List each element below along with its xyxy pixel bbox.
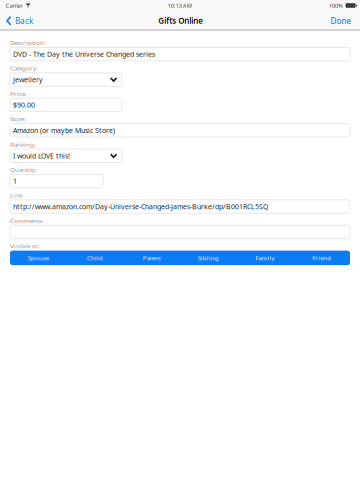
button[interactable]: $90.00: [10, 98, 122, 112]
staticText: Gifts Online: [158, 15, 203, 26]
button[interactable]: Done: [322, 11, 360, 30]
staticText: Category:: [10, 64, 38, 72]
staticText: Done: [330, 15, 351, 26]
button[interactable]: Jewellery: [10, 73, 122, 86]
button[interactable]: Spouse: [10, 251, 67, 265]
staticText: Jewellery: [13, 75, 43, 84]
button[interactable]: Parent: [123, 251, 180, 265]
staticText: Comments:: [10, 216, 44, 224]
button[interactable]: Family: [237, 251, 293, 265]
button[interactable]: DVD - The Day the Universe Changed serie…: [10, 47, 350, 61]
staticText: Store:: [10, 115, 26, 123]
staticText: Description:: [10, 39, 46, 47]
staticText: Link:: [10, 191, 24, 199]
button[interactable]: http://www.amazon.com/Day-Universe-Chang…: [10, 200, 350, 213]
button[interactable]: I would LOVE this!: [10, 149, 122, 162]
staticText: Sibling: [198, 254, 219, 262]
staticText: Back: [15, 15, 33, 26]
staticText: Ranking:: [10, 140, 36, 148]
staticText: http://www.amazon.com/Day-Universe-Chang…: [13, 202, 268, 211]
button[interactable]: 1: [10, 174, 103, 188]
staticText: Child: [87, 254, 103, 262]
button[interactable]: Sibling: [180, 251, 237, 265]
staticText: 10:13 AM: [168, 2, 192, 9]
staticText: Parent: [143, 254, 161, 262]
button[interactable]: Back: [0, 11, 39, 30]
staticText: Visible to:: [10, 242, 40, 250]
button[interactable]: Amazon (or maybe Music Store): [10, 124, 350, 137]
staticText: 1: [13, 176, 17, 186]
staticText: DVD - The Day the Universe Changed serie…: [13, 49, 155, 59]
staticText: Price:: [10, 89, 27, 97]
button[interactable]: Friend: [293, 251, 350, 265]
staticText: Family: [255, 254, 274, 262]
button[interactable]: Child: [67, 251, 123, 265]
staticText: $90.00: [13, 100, 35, 109]
staticText: 100%: [329, 2, 343, 9]
staticText: Friend: [312, 254, 331, 262]
staticText: Carrier: [5, 2, 22, 9]
staticText: I would LOVE this!: [13, 151, 70, 160]
staticText: Amazon (or maybe Music Store): [13, 126, 115, 135]
button[interactable]: [10, 225, 350, 239]
staticText: Quantity:: [10, 166, 37, 174]
staticText: Spouse: [28, 254, 49, 262]
